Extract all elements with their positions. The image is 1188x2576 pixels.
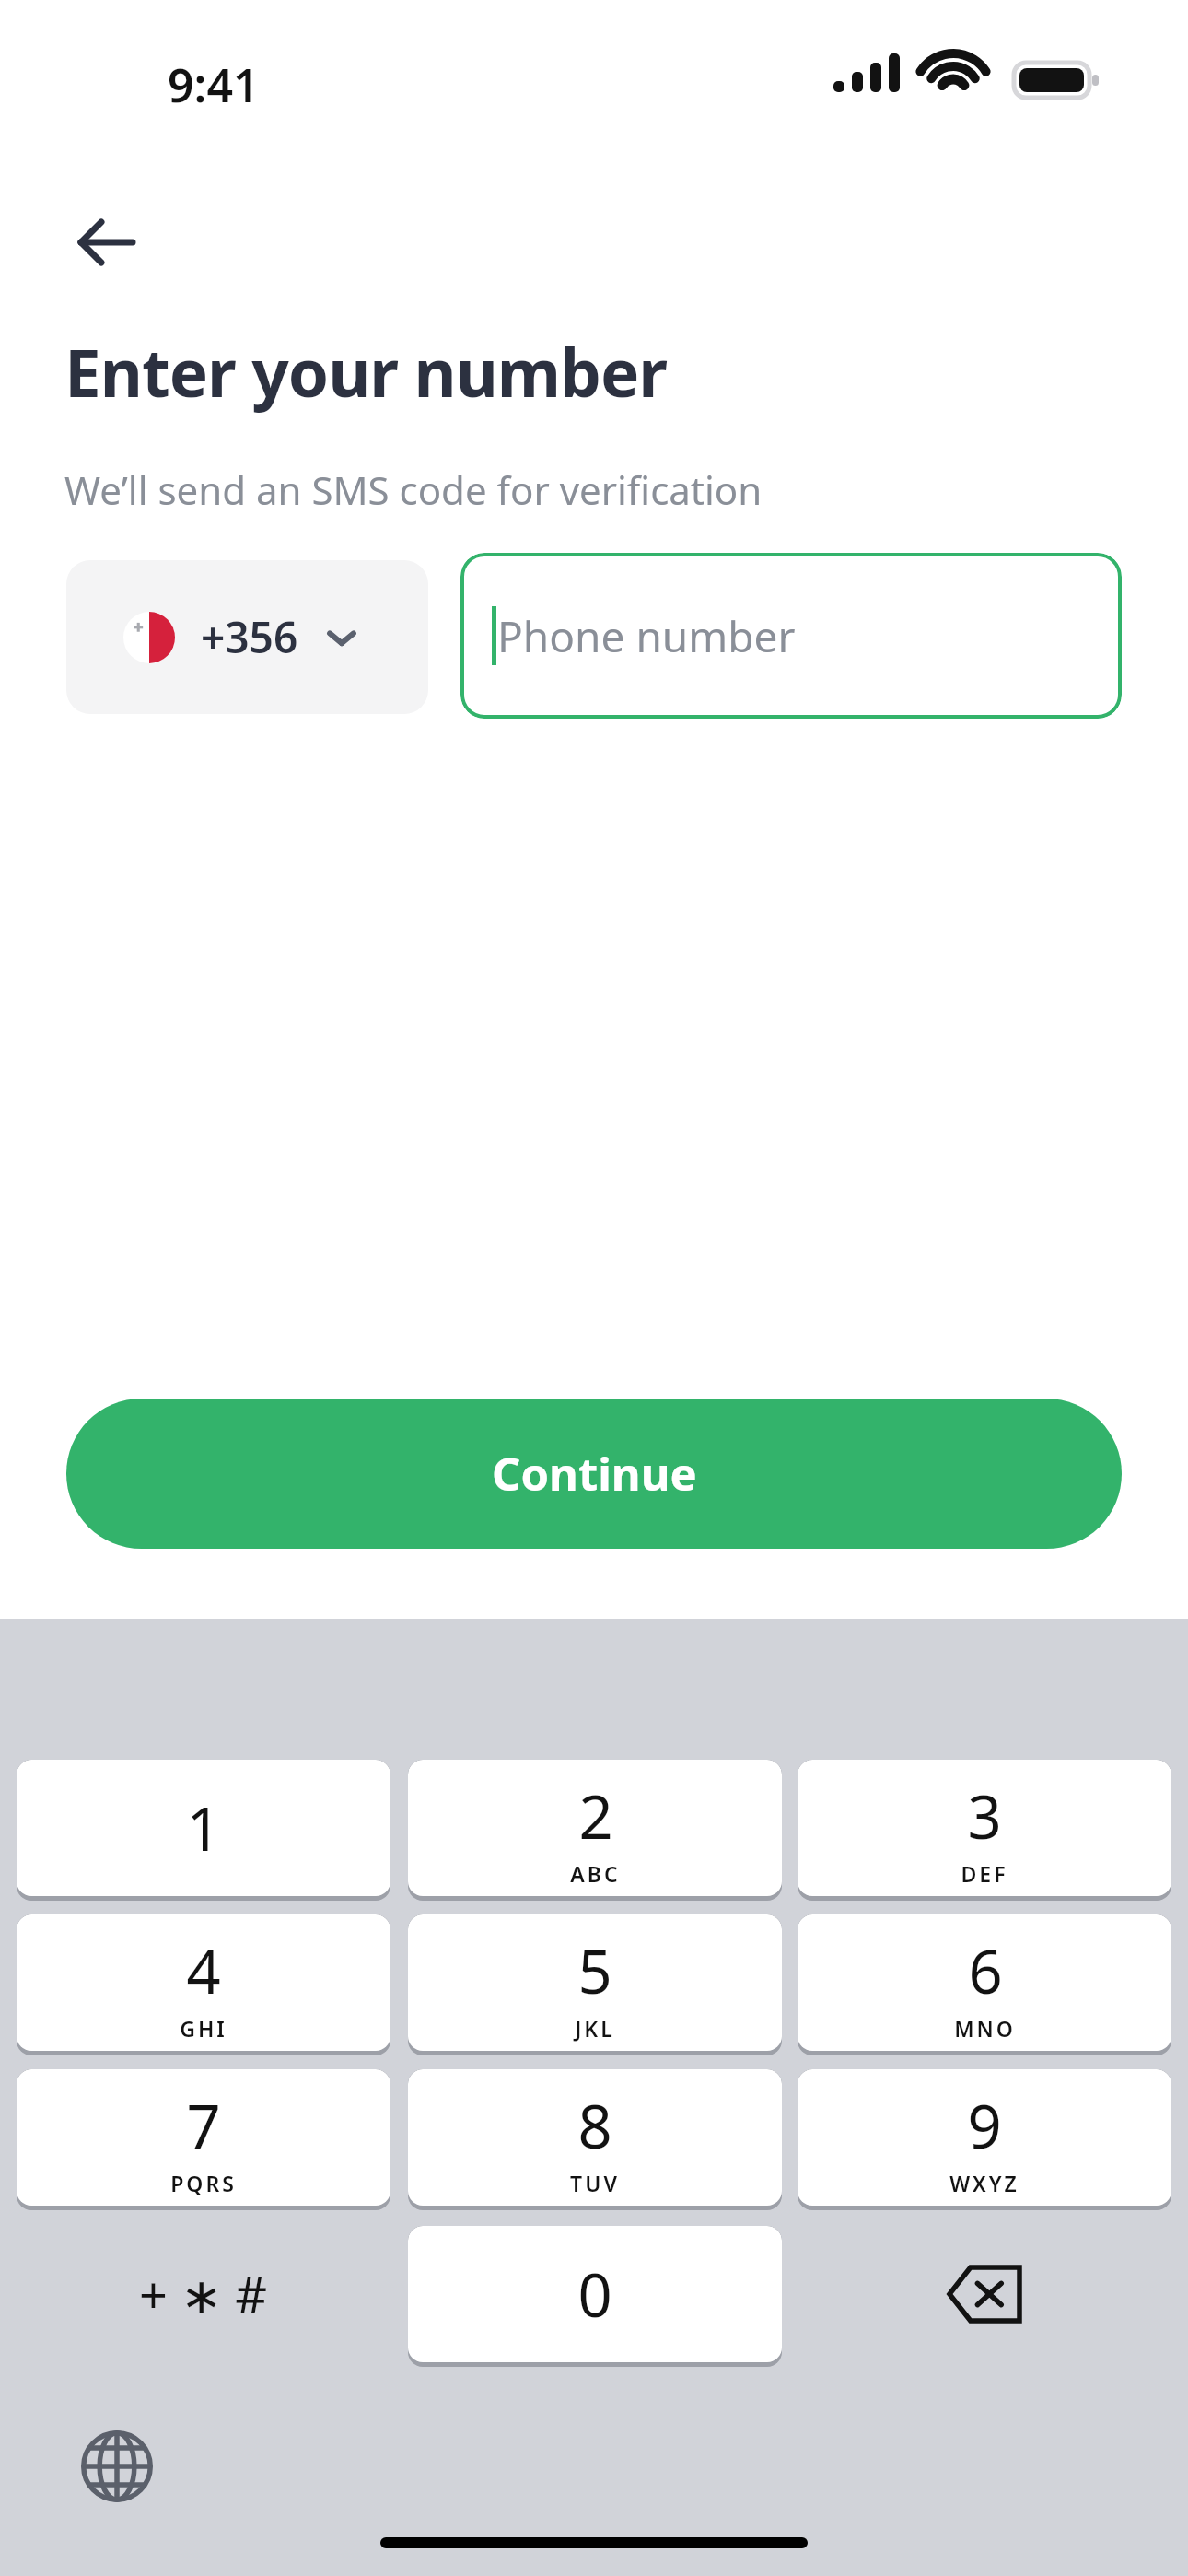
button[interactable]: 8: [408, 2069, 782, 2210]
staticText: + ∗ #: [139, 2260, 268, 2328]
button[interactable]: 4: [17, 1914, 390, 2055]
staticText: 6: [968, 1930, 1003, 2012]
staticText: Enter your number: [64, 327, 668, 416]
staticText: MNO: [954, 2014, 1016, 2043]
staticText: 1: [186, 1787, 221, 1869]
button[interactable]: +356: [66, 560, 428, 714]
staticText: 8: [577, 2085, 612, 2167]
button[interactable]: Continue: [66, 1399, 1122, 1549]
staticText: We’ll send an SMS code for verification: [64, 463, 763, 516]
staticText: 3: [967, 1775, 1002, 1857]
staticText: 4: [186, 1930, 221, 2012]
button[interactable]: 5: [408, 1914, 782, 2055]
staticText: Continue: [492, 1443, 697, 1505]
button[interactable]: 0: [408, 2226, 782, 2367]
staticText: Phone number: [497, 607, 796, 665]
button[interactable]: Back: [55, 192, 157, 293]
button[interactable]: + ∗ #: [17, 2226, 390, 2362]
button[interactable]: Change keyboard language: [59, 2408, 175, 2524]
button[interactable]: 6: [798, 1914, 1171, 2055]
staticText: 9:41: [168, 53, 260, 116]
staticText: GHI: [180, 2014, 227, 2043]
button[interactable]: Backspace: [798, 2226, 1171, 2362]
button[interactable]: 1: [17, 1760, 390, 1901]
button[interactable]: 7: [17, 2069, 390, 2210]
button[interactable]: Phone number: [460, 553, 1122, 719]
staticText: 0: [577, 2254, 612, 2336]
staticText: WXYZ: [949, 2169, 1019, 2197]
staticText: 7: [186, 2085, 221, 2167]
staticText: 2: [578, 1775, 613, 1857]
staticText: ABC: [570, 1859, 621, 1888]
button[interactable]: 3: [798, 1760, 1171, 1901]
staticText: TUV: [570, 2169, 620, 2197]
staticText: 5: [577, 1930, 612, 2012]
staticText: 9: [967, 2085, 1002, 2167]
staticText: DEF: [961, 1859, 1008, 1888]
button[interactable]: 9: [798, 2069, 1171, 2210]
staticText: JKL: [575, 2014, 615, 2043]
button[interactable]: 2: [408, 1760, 782, 1901]
staticText: +356: [201, 608, 298, 666]
staticText: PQRS: [170, 2169, 237, 2197]
